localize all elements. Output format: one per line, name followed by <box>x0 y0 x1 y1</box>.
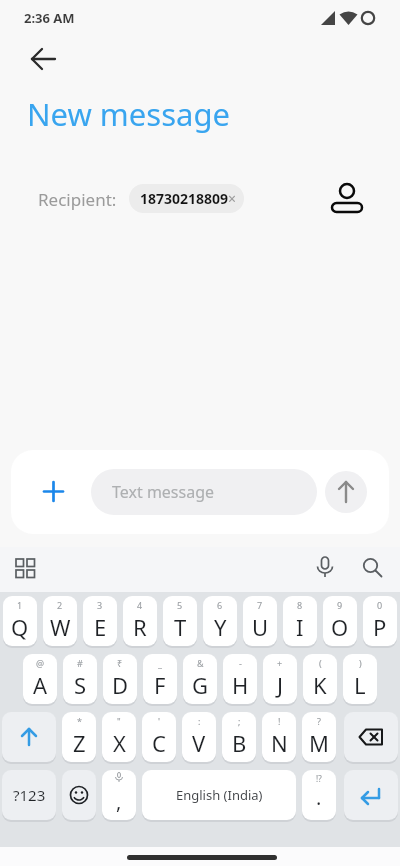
button[interactable] <box>323 596 357 646</box>
button[interactable] <box>243 596 277 646</box>
button[interactable] <box>357 552 389 584</box>
button[interactable] <box>344 770 398 820</box>
staticText: Z <box>73 728 86 758</box>
button[interactable] <box>283 596 317 646</box>
staticText: !? <box>316 773 322 784</box>
staticText: English (India) <box>176 786 263 804</box>
button[interactable] <box>83 596 117 646</box>
staticText: J <box>277 670 284 700</box>
button[interactable] <box>143 654 177 704</box>
button[interactable] <box>62 770 96 820</box>
staticText: & <box>197 657 204 669</box>
staticText: 6 <box>217 599 223 611</box>
staticText: N <box>271 728 288 758</box>
button[interactable] <box>10 552 42 584</box>
staticText: ?123 <box>13 785 46 805</box>
button[interactable] <box>43 596 77 646</box>
staticText: ! <box>278 715 281 727</box>
button[interactable] <box>262 712 296 762</box>
staticText: 9 <box>337 599 343 611</box>
staticText: ; <box>238 715 241 727</box>
staticText: 2 <box>57 599 63 611</box>
button[interactable] <box>62 712 96 762</box>
staticText: I <box>296 612 304 642</box>
staticText: ) <box>359 657 362 669</box>
button[interactable] <box>222 712 256 762</box>
staticText: × <box>228 189 237 208</box>
button[interactable]: Text message <box>91 469 317 515</box>
staticText: ₹ <box>117 657 123 669</box>
staticText: D <box>112 670 129 700</box>
staticText: " <box>117 715 121 727</box>
staticText: . <box>316 784 322 811</box>
staticText: C <box>152 728 166 758</box>
button[interactable] <box>123 596 157 646</box>
staticText: + <box>277 657 283 669</box>
staticText: : <box>198 715 201 727</box>
button[interactable] <box>325 471 367 513</box>
button[interactable] <box>328 176 366 216</box>
button[interactable] <box>102 712 136 762</box>
button[interactable] <box>26 43 60 75</box>
button[interactable] <box>303 654 337 704</box>
staticText: 1 <box>17 599 23 611</box>
staticText: ' <box>158 715 161 727</box>
button[interactable] <box>103 654 137 704</box>
staticText: Y <box>214 612 227 642</box>
staticText: 5 <box>177 599 183 611</box>
staticText: Recipient: <box>38 188 117 211</box>
button[interactable] <box>363 596 397 646</box>
staticText: M <box>309 728 329 758</box>
staticText: Text message <box>112 481 215 503</box>
button[interactable] <box>36 474 71 509</box>
staticText: * <box>77 715 82 727</box>
staticText: 0 <box>377 599 383 611</box>
button[interactable]: ?123 <box>2 770 56 820</box>
staticText: 18730218809 <box>140 189 229 208</box>
button[interactable] <box>302 712 336 762</box>
staticText: P <box>373 612 387 642</box>
staticText: A <box>33 670 48 700</box>
button[interactable] <box>203 596 237 646</box>
staticText: , <box>116 788 122 815</box>
button[interactable] <box>2 712 56 762</box>
staticText: 2:36 AM <box>24 9 75 27</box>
staticText: X <box>113 728 126 758</box>
staticText: _ <box>158 657 162 669</box>
staticText: F <box>154 670 166 700</box>
button[interactable] <box>310 552 340 584</box>
button[interactable] <box>3 596 37 646</box>
staticText: O <box>331 612 349 642</box>
staticText: S <box>74 670 87 700</box>
staticText: L <box>354 670 366 700</box>
staticText: Q <box>11 612 29 642</box>
button[interactable] <box>63 654 97 704</box>
button[interactable] <box>183 654 217 704</box>
staticText: - <box>239 657 242 669</box>
staticText: V <box>192 728 206 758</box>
button[interactable]: 18730218809 <box>129 184 244 213</box>
button[interactable] <box>344 712 398 762</box>
button[interactable]: English (India) <box>142 770 296 820</box>
staticText: 4 <box>137 599 143 611</box>
button[interactable] <box>23 654 57 704</box>
button[interactable] <box>142 712 176 762</box>
staticText: @ <box>36 657 45 669</box>
button[interactable] <box>302 770 336 820</box>
staticText: # <box>77 657 83 669</box>
button[interactable] <box>102 770 136 820</box>
staticText: 8 <box>297 599 303 611</box>
staticText: T <box>174 612 187 642</box>
staticText: 7 <box>257 599 263 611</box>
button[interactable] <box>223 654 257 704</box>
staticText: E <box>94 612 107 642</box>
staticText: G <box>192 670 209 700</box>
button[interactable] <box>343 654 377 704</box>
staticText: B <box>232 728 247 758</box>
button[interactable] <box>163 596 197 646</box>
button[interactable] <box>263 654 297 704</box>
button[interactable] <box>182 712 216 762</box>
staticText: 3 <box>97 599 103 611</box>
staticText: U <box>252 612 269 642</box>
staticText: ( <box>319 657 322 669</box>
